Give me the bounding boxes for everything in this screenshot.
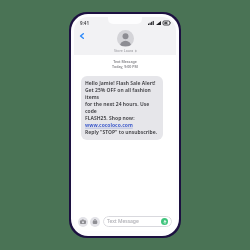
staticText: Text Message xyxy=(107,218,139,225)
button[interactable]: Hello Jamie! Flash Sale Alert! xyxy=(81,76,163,140)
button[interactable]: Camera xyxy=(78,217,88,227)
staticText: for the next 24 hours. Use code xyxy=(85,101,159,115)
button[interactable]: Apps xyxy=(90,217,100,227)
button[interactable]: Back xyxy=(76,30,88,42)
button[interactable]: Text Message xyxy=(103,216,172,227)
button[interactable]: Store Laura xyxy=(114,30,137,53)
staticText: Today, 9:00 PM xyxy=(81,64,169,69)
staticText: Get 25% OFF on all fashion items xyxy=(85,87,159,101)
staticText: Store Laura xyxy=(114,48,134,53)
staticText: Reply "STOP" to unsubscribe. xyxy=(85,129,158,136)
staticText: www.cocoloco.com xyxy=(85,122,133,129)
staticText: Text Message xyxy=(81,59,169,64)
staticText: FLASH25. Shop now: xyxy=(85,115,135,122)
staticText: Hello Jamie! Flash Sale Alert! xyxy=(85,80,156,87)
other: Send xyxy=(161,218,168,225)
staticText: 9:41 xyxy=(80,20,89,26)
